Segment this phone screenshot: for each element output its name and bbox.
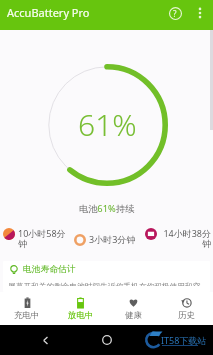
staticText: 充电中	[14, 310, 40, 321]
staticText: 10小时58分钟	[18, 227, 69, 250]
staticText: ?	[173, 8, 177, 19]
staticText: 14小时38分钟	[160, 227, 211, 250]
button[interactable]: Help	[162, 0, 188, 26]
staticText: 电池61%持续	[0, 202, 213, 215]
button[interactable]: Home	[96, 329, 118, 351]
button[interactable]: 充电中	[0, 292, 54, 325]
button[interactable]: More options	[187, 0, 213, 26]
staticText: AccuBattery Pro	[7, 5, 90, 20]
button[interactable]: 10小时58分钟	[0, 227, 71, 250]
button[interactable]: 14小时38分钟	[142, 227, 213, 250]
button[interactable]: 健康	[107, 292, 160, 325]
button[interactable]: Back	[34, 329, 56, 351]
staticText: 61%	[78, 104, 137, 145]
button[interactable]: 历史	[160, 292, 213, 325]
staticText: IT58下载站	[161, 334, 207, 346]
other: Watermark	[145, 330, 207, 350]
staticText: 放电中	[68, 310, 94, 321]
staticText: 屏幕开和关的剩余电池时间告诉你手机在你积极使用和空闲时能持续多久。	[8, 282, 206, 286]
staticText: 健康	[125, 310, 142, 321]
button[interactable]: 3小时3分钟	[71, 227, 142, 250]
staticText: 3小时3分钟	[89, 233, 140, 245]
button[interactable]: 放电中	[54, 292, 107, 325]
staticText: 电池寿命估计	[23, 264, 76, 275]
staticText: 历史	[178, 310, 195, 321]
button[interactable]: 电池寿命估计	[3, 261, 210, 292]
